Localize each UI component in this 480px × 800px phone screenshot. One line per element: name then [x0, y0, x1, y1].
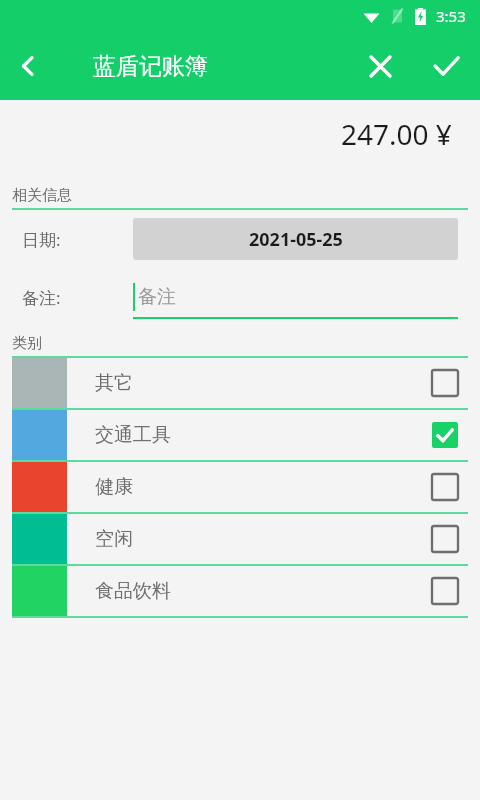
staticText: 类别: [12, 334, 42, 353]
button[interactable]: 2021-05-25: [133, 218, 458, 260]
staticText: 健康: [95, 475, 133, 499]
button[interactable]: 其它: [0, 358, 480, 408]
staticText: 备注:: [22, 286, 61, 309]
staticText: 蓝盾记账簿: [93, 52, 208, 81]
button[interactable]: 食品饮料: [0, 566, 480, 616]
staticText: 空闲: [95, 527, 133, 551]
button[interactable]: Cancel: [352, 38, 408, 94]
staticText: 247.00 ¥: [341, 115, 452, 153]
staticText: 其它: [95, 371, 133, 395]
staticText: 备注: [138, 285, 176, 309]
button[interactable]: 空闲: [0, 514, 480, 564]
button[interactable]: 交通工具: [0, 410, 480, 460]
button[interactable]: Back: [0, 38, 56, 94]
staticText: 交通工具: [95, 423, 171, 447]
button[interactable]: Save: [418, 38, 474, 94]
staticText: 食品饮料: [95, 579, 171, 603]
button[interactable]: 备注: [133, 275, 458, 319]
staticText: 日期:: [22, 228, 61, 251]
staticText: 3:53: [436, 6, 466, 26]
staticText: 2021-05-25: [249, 227, 343, 252]
staticText: 相关信息: [12, 186, 72, 205]
button[interactable]: 健康: [0, 462, 480, 512]
